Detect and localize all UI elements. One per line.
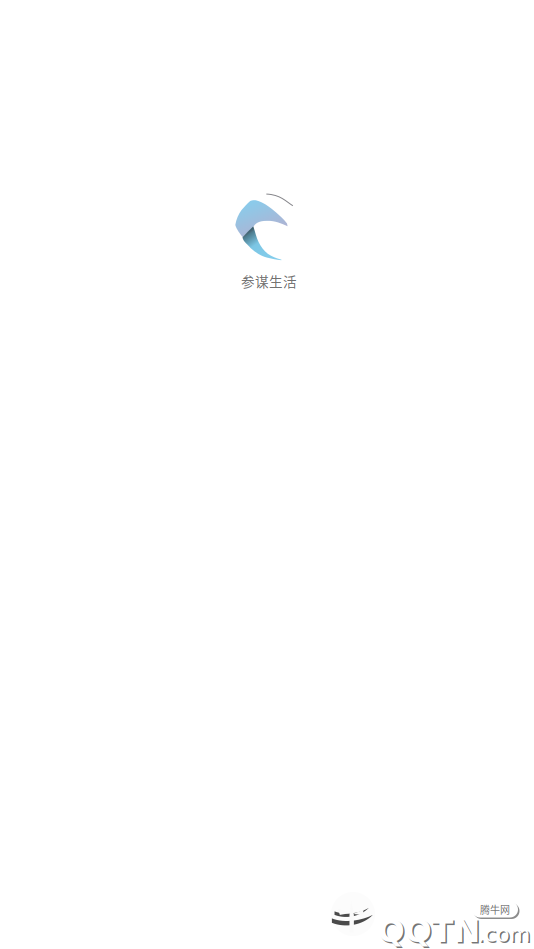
staticText: .com — [477, 922, 530, 946]
staticText: QQTN — [379, 914, 482, 949]
staticText: .com — [479, 923, 532, 948]
staticText: 腾牛网 — [480, 902, 510, 917]
staticText: QQTN — [377, 912, 480, 949]
staticText: 参谋生活 — [241, 271, 297, 291]
